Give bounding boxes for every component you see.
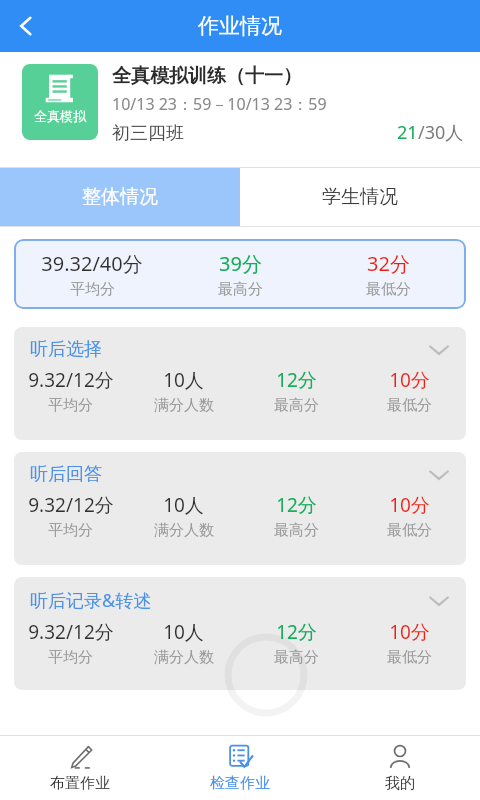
staticText: 满分人数 (154, 396, 214, 415)
staticText: 10分 (389, 492, 430, 518)
staticText: 听后选择 (30, 338, 102, 361)
staticText: 最高分 (274, 521, 319, 540)
staticText: 9.32/12分 (28, 619, 114, 645)
staticText: 10分 (389, 367, 430, 393)
staticText: 整体情况 (82, 185, 158, 209)
staticText: 9.32/12分 (28, 492, 114, 518)
button[interactable]: 全真模拟 (22, 64, 98, 140)
staticText: 学生情况 (322, 185, 398, 209)
staticText: 检查作业 (210, 774, 270, 793)
staticText: 听后记录&转述 (30, 588, 152, 613)
staticText: 平均分 (48, 396, 93, 415)
staticText: 布置作业 (50, 774, 110, 793)
staticText: /30人 (418, 120, 464, 145)
staticText: 最高分 (274, 648, 319, 667)
staticText: 听后回答 (30, 463, 102, 486)
staticText: 10/13 23：59－10/13 23：59 (112, 93, 327, 115)
staticText: 39.32/40分 (41, 250, 143, 277)
staticText: 平均分 (70, 280, 115, 299)
staticText: 12分 (276, 492, 317, 518)
staticText: 最高分 (274, 396, 319, 415)
staticText: 平均分 (48, 648, 93, 667)
button[interactable]: 布置作业 (0, 736, 160, 800)
button[interactable]: Back (0, 0, 52, 52)
button[interactable]: 听后回答 (14, 452, 466, 565)
staticText: 最低分 (387, 648, 432, 667)
staticText: 最低分 (387, 521, 432, 540)
staticText: 初三四班 (112, 122, 184, 145)
staticText: 12分 (276, 367, 317, 393)
staticText: 我的 (385, 774, 415, 793)
staticText: 最低分 (366, 280, 411, 299)
staticText: 39分 (219, 250, 262, 277)
button[interactable]: 整体情况 (0, 168, 240, 226)
staticText: 满分人数 (154, 521, 214, 540)
staticText: 10人 (163, 492, 204, 518)
button[interactable]: 检查作业 (160, 736, 320, 800)
staticText: 10人 (163, 619, 204, 645)
staticText: 全真模拟训练（十一） (112, 64, 302, 88)
button[interactable]: 学生情况 (240, 168, 480, 226)
button[interactable]: 39.32/40分 (14, 239, 466, 309)
staticText: 平均分 (48, 521, 93, 540)
staticText: 32分 (367, 250, 410, 277)
staticText: 9.32/12分 (28, 367, 114, 393)
staticText: 12分 (276, 619, 317, 645)
staticText: 全真模拟 (34, 108, 86, 124)
button[interactable]: 听后记录&转述 (14, 577, 466, 690)
staticText: 10分 (389, 619, 430, 645)
button[interactable]: 我的 (320, 736, 480, 800)
staticText: 10人 (163, 367, 204, 393)
staticText: 21 (397, 120, 418, 145)
button[interactable]: 听后选择 (14, 327, 466, 440)
staticText: 最高分 (218, 280, 263, 299)
staticText: 最低分 (387, 396, 432, 415)
staticText: 作业情况 (198, 13, 282, 39)
staticText: 满分人数 (154, 648, 214, 667)
